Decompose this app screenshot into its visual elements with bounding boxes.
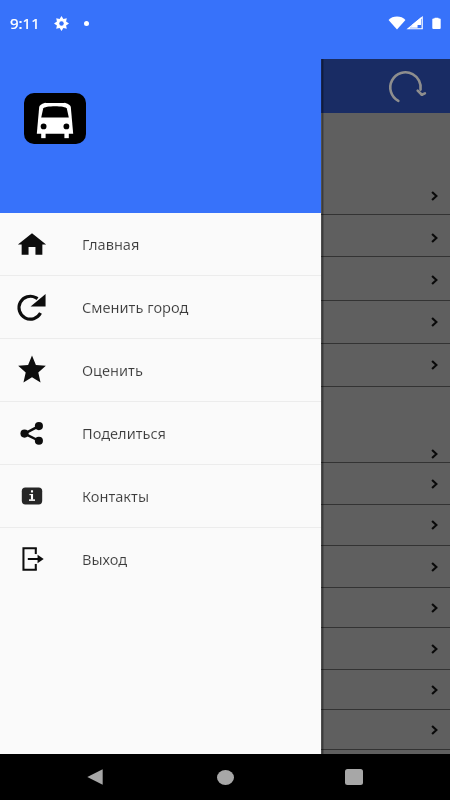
button[interactable]: Сменить город — [0, 276, 321, 338]
button[interactable] — [0, 344, 450, 386]
button[interactable]: Контакты — [0, 465, 321, 527]
button[interactable]: App icon — [24, 93, 86, 144]
staticText: Контакты — [82, 486, 149, 506]
button[interactable]: Home — [201, 754, 249, 800]
button[interactable] — [0, 113, 450, 214]
button[interactable] — [0, 710, 450, 749]
button[interactable] — [0, 670, 450, 709]
button[interactable] — [0, 588, 450, 627]
button[interactable] — [0, 750, 450, 789]
button[interactable]: Back — [71, 754, 119, 800]
button[interactable]: Поделиться — [0, 402, 321, 464]
button[interactable]: Recent apps — [330, 754, 378, 800]
button[interactable] — [0, 257, 450, 300]
button[interactable] — [0, 546, 450, 587]
button[interactable] — [0, 463, 450, 504]
staticText: Сменить город — [82, 297, 189, 317]
staticText: Выход — [82, 549, 128, 569]
staticText: Главная — [82, 234, 140, 254]
button[interactable] — [0, 505, 450, 545]
staticText: Оценить — [82, 360, 143, 380]
staticText: Поделиться — [82, 423, 166, 443]
staticText: 9:11 — [10, 13, 40, 33]
button[interactable]: Refresh — [387, 69, 427, 109]
button[interactable]: Главная — [0, 213, 321, 275]
button[interactable]: Выход — [0, 528, 321, 590]
button[interactable] — [0, 215, 450, 256]
button[interactable] — [0, 628, 450, 669]
button[interactable]: Оценить — [0, 339, 321, 401]
button[interactable] — [0, 301, 450, 343]
button[interactable] — [0, 387, 450, 462]
